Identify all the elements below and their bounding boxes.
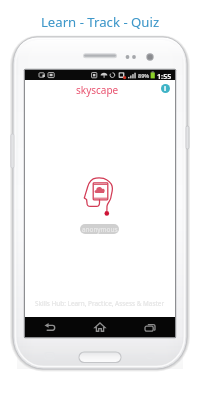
button[interactable]: Recent apps (125, 317, 175, 337)
button[interactable]: anonymous (80, 224, 119, 234)
staticText: anonymous (82, 225, 118, 234)
staticText: 1:55 (157, 71, 172, 81)
staticText: i (164, 84, 167, 93)
button[interactable]: Home (75, 317, 125, 337)
staticText: skyscape (76, 83, 119, 97)
staticText: Learn - Track - Quiz (0, 13, 200, 31)
button[interactable]: Back (25, 317, 75, 337)
staticText: 89% (138, 72, 150, 79)
staticText: Skills Hub: Learn, Practice, Assess & Ma… (35, 299, 165, 308)
button[interactable]: Information (161, 84, 170, 93)
